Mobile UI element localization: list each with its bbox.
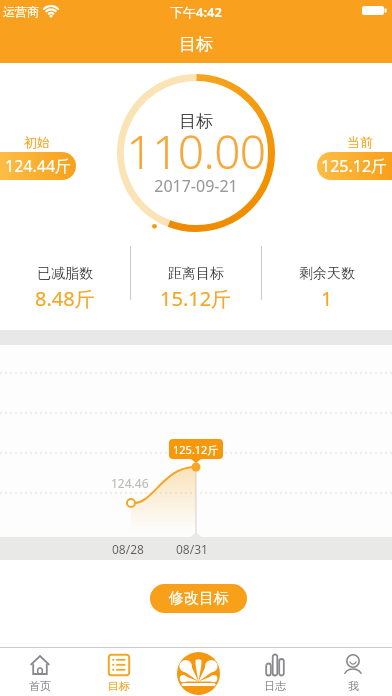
- staticText: 目标: [0, 34, 392, 55]
- button[interactable]: 首页: [0, 648, 79, 696]
- staticText: 初始: [24, 134, 50, 150]
- button[interactable]: [158, 648, 236, 696]
- button[interactable]: 日志: [236, 648, 314, 696]
- staticText: 剩余天数: [299, 265, 355, 283]
- button[interactable]: 剩余天数: [262, 246, 392, 300]
- button[interactable]: 125.12斤: [317, 152, 392, 180]
- staticText: 110.00: [0, 120, 392, 183]
- staticText: 下午4:42: [0, 3, 392, 21]
- staticText: 日志: [264, 679, 286, 693]
- staticText: 当前: [347, 134, 373, 150]
- button[interactable]: 距离目标: [131, 246, 261, 300]
- button[interactable]: 目标: [79, 648, 158, 696]
- staticText: 目标: [0, 111, 392, 132]
- staticText: 125.12斤: [321, 155, 388, 177]
- staticText: 我: [348, 679, 359, 693]
- button[interactable]: 已减脂数: [0, 246, 130, 300]
- staticText: 运营商: [3, 4, 39, 19]
- staticText: 1: [321, 285, 333, 312]
- staticText: 125.12斤: [173, 442, 219, 457]
- staticText: 15.12斤: [160, 285, 232, 312]
- staticText: 距离目标: [168, 265, 224, 283]
- staticText: 124.44斤: [5, 155, 72, 177]
- button[interactable]: 124.44斤: [0, 152, 76, 180]
- button[interactable]: 我: [314, 648, 392, 696]
- staticText: 124.46: [111, 475, 149, 491]
- button[interactable]: 修改目标: [150, 584, 247, 613]
- staticText: 8.48斤: [35, 285, 95, 312]
- staticText: 首页: [29, 679, 51, 693]
- staticText: 08/28: [112, 541, 144, 557]
- staticText: 2017-09-21: [0, 175, 392, 197]
- staticText: 目标: [108, 679, 130, 693]
- staticText: 修改目标: [169, 589, 229, 608]
- staticText: 08/31: [176, 541, 208, 557]
- staticText: 已减脂数: [37, 265, 93, 283]
